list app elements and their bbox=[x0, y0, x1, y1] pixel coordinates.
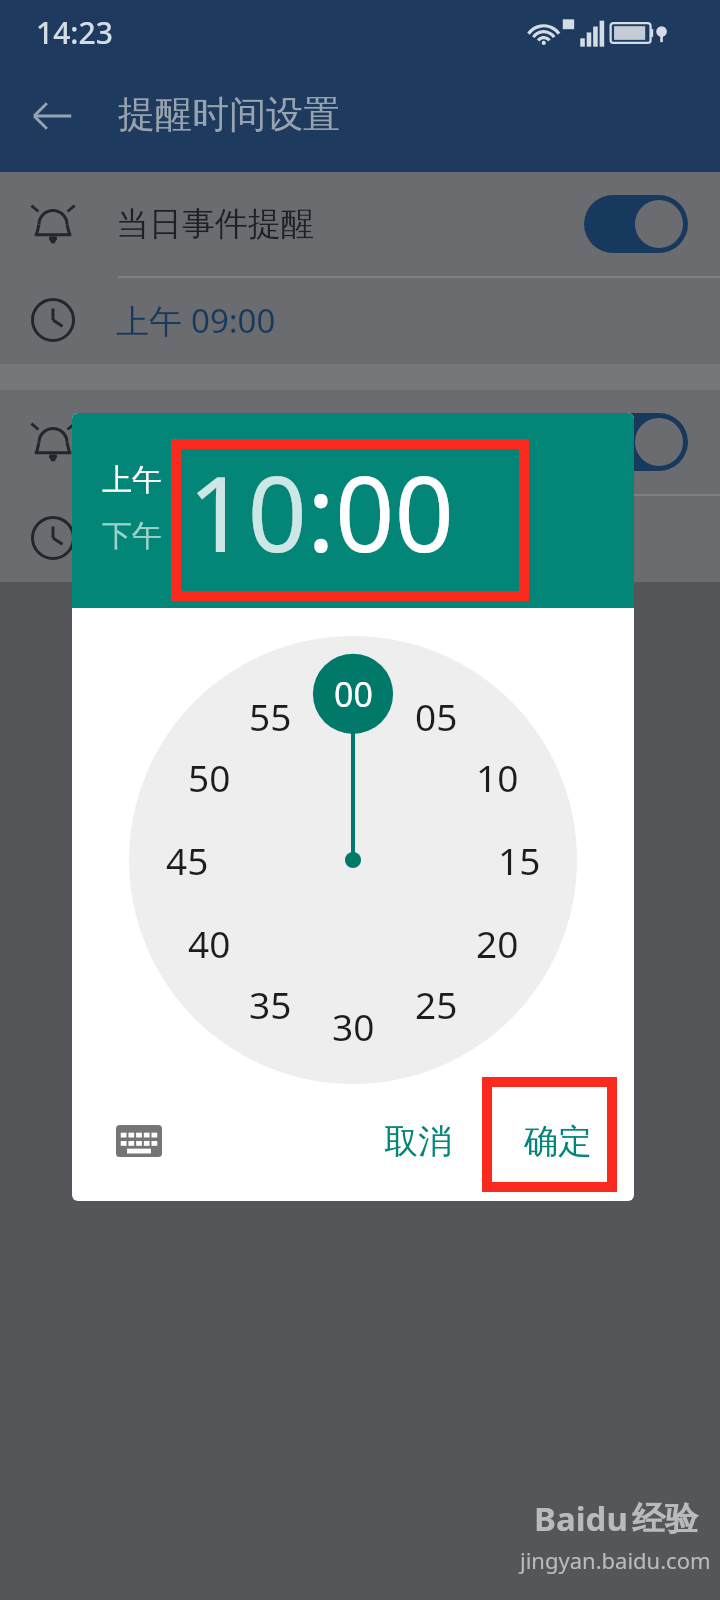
staticText: 提醒时间设置 bbox=[118, 91, 340, 138]
staticText: : bbox=[307, 441, 335, 583]
button[interactable]: 当日事件提醒 bbox=[0, 172, 720, 276]
button[interactable]: Toggle reminder bbox=[584, 413, 688, 471]
button[interactable]: Switch to keyboard input bbox=[106, 1113, 172, 1169]
staticText: jingyan.baidu.com bbox=[520, 1545, 711, 1575]
staticText: 确定 bbox=[524, 1120, 592, 1163]
staticText: 15 bbox=[498, 835, 541, 885]
button[interactable]: 15 bbox=[481, 832, 557, 888]
staticText: 14:23 bbox=[36, 12, 113, 53]
staticText: 55 bbox=[249, 691, 292, 741]
button[interactable]: 20 bbox=[459, 915, 535, 971]
staticText: 上午 bbox=[116, 298, 191, 343]
button[interactable]: 取消 bbox=[366, 1106, 470, 1177]
staticText: 00 bbox=[334, 671, 373, 717]
staticText: 05 bbox=[415, 691, 458, 741]
staticText: 09:00 bbox=[191, 298, 276, 343]
staticText: 10 bbox=[188, 441, 307, 583]
staticText: 45 bbox=[166, 835, 209, 885]
button[interactable] bbox=[0, 494, 720, 582]
button[interactable]: 确定 bbox=[506, 1106, 610, 1177]
staticText: 下午 bbox=[102, 517, 162, 555]
staticText: 上午 bbox=[102, 461, 162, 499]
staticText: 10 bbox=[476, 752, 519, 802]
button[interactable]: 35 bbox=[232, 976, 308, 1032]
button[interactable]: Toggle reminder bbox=[0, 390, 720, 494]
staticText: 35 bbox=[249, 979, 292, 1029]
staticText: 取消 bbox=[384, 1120, 452, 1163]
staticText: 40 bbox=[188, 918, 231, 968]
staticText: 00 bbox=[335, 441, 454, 583]
staticText: 20 bbox=[476, 918, 519, 968]
staticText: Baidu bbox=[534, 1496, 628, 1541]
button[interactable]: 下午 bbox=[102, 517, 182, 569]
button[interactable]: 00 bbox=[335, 441, 454, 583]
button[interactable]: 25 bbox=[398, 976, 474, 1032]
button[interactable]: 50 bbox=[171, 749, 247, 805]
staticText: 30 bbox=[332, 1001, 375, 1051]
staticText: 50 bbox=[188, 752, 231, 802]
button[interactable]: 05 bbox=[398, 688, 474, 744]
button[interactable]: 10 bbox=[459, 749, 535, 805]
button[interactable]: 45 bbox=[149, 832, 225, 888]
button[interactable]: 上午 bbox=[0, 276, 720, 364]
staticText: 当日事件提醒 bbox=[116, 203, 314, 245]
button[interactable]: 30 bbox=[315, 998, 391, 1054]
button[interactable]: Toggle reminder bbox=[584, 195, 688, 253]
staticText: 经验 bbox=[632, 1498, 698, 1540]
button[interactable]: 40 bbox=[171, 915, 247, 971]
button[interactable]: 00 bbox=[315, 666, 391, 722]
button[interactable]: Back bbox=[20, 84, 84, 148]
button[interactable]: 上午 bbox=[102, 461, 182, 513]
staticText: 25 bbox=[415, 979, 458, 1029]
button[interactable]: 55 bbox=[232, 688, 308, 744]
button[interactable]: 10 bbox=[188, 441, 307, 583]
